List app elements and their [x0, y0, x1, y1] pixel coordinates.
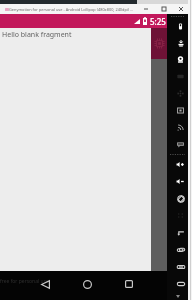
button[interactable]: Back — [35, 274, 55, 294]
button[interactable]: Volume down — [167, 173, 188, 190]
staticText: 5:25 — [150, 16, 166, 27]
staticText: Hello blank fragment — [2, 30, 72, 40]
button[interactable]: Power — [167, 18, 188, 34]
button[interactable]: Recent apps — [167, 241, 188, 258]
button[interactable]: Widget — [151, 28, 167, 59]
button[interactable]: Storage — [167, 68, 188, 85]
button[interactable]: Close — [172, 4, 189, 14]
button[interactable]: Recent apps — [119, 274, 139, 294]
button[interactable]: Collapse — [167, 292, 188, 300]
button[interactable]: Home — [77, 274, 97, 294]
button[interactable]: Messages — [167, 136, 188, 153]
button[interactable]: Home — [167, 258, 188, 275]
button[interactable]: Menu — [167, 275, 188, 292]
button[interactable]: D-pad — [167, 85, 188, 102]
staticText: Genymotion for personal use - Android Lo… — [9, 7, 134, 12]
button[interactable]: Volume up — [167, 156, 188, 173]
button[interactable]: Screenshot — [167, 102, 188, 119]
button[interactable]: Minimize — [137, 4, 154, 14]
button[interactable]: Maximize — [155, 4, 172, 14]
button[interactable]: Back — [167, 224, 188, 241]
button[interactable]: Rotate — [167, 190, 188, 207]
button[interactable]: GPS — [167, 34, 188, 51]
staticText: free for personal use — [0, 278, 49, 285]
button[interactable]: Camera — [167, 51, 188, 68]
button[interactable]: Network — [167, 119, 188, 136]
